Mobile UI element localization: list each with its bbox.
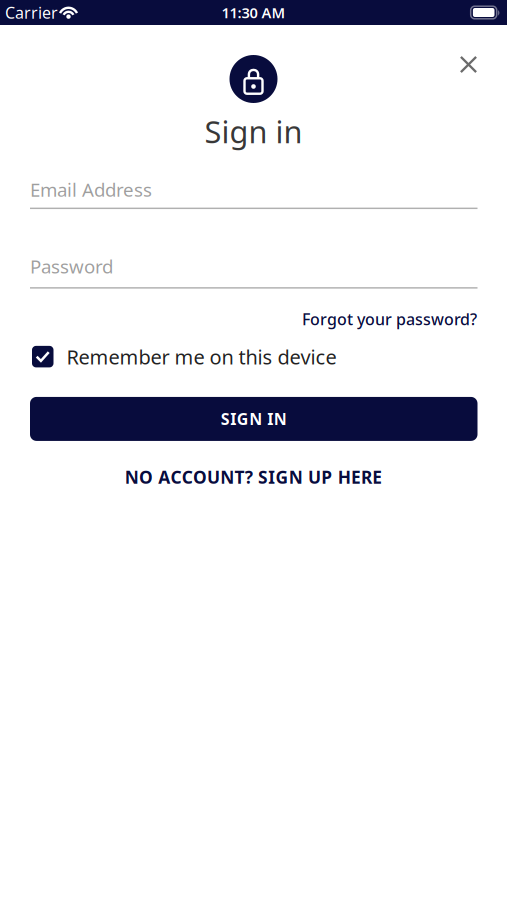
staticText: Remember me on this device: [66, 343, 336, 370]
staticText: Sign in: [204, 111, 302, 152]
button[interactable]: Remember me on this device: [32, 343, 336, 370]
staticText: Email Address: [30, 177, 152, 202]
button[interactable]: SIGN IN: [30, 397, 477, 441]
staticText: SIGN IN: [221, 408, 287, 429]
staticText: NO ACCOUNT? SIGN UP HERE: [125, 465, 382, 488]
staticText: Forgot your password?: [302, 308, 477, 329]
staticText: Password: [30, 254, 113, 279]
button[interactable]: Close: [451, 47, 485, 81]
button[interactable]: Forgot your password?: [302, 308, 477, 329]
staticText: 11:30 AM: [221, 3, 285, 22]
button[interactable]: NO ACCOUNT? SIGN UP HERE: [125, 465, 382, 488]
staticText: Carrier: [5, 2, 58, 23]
